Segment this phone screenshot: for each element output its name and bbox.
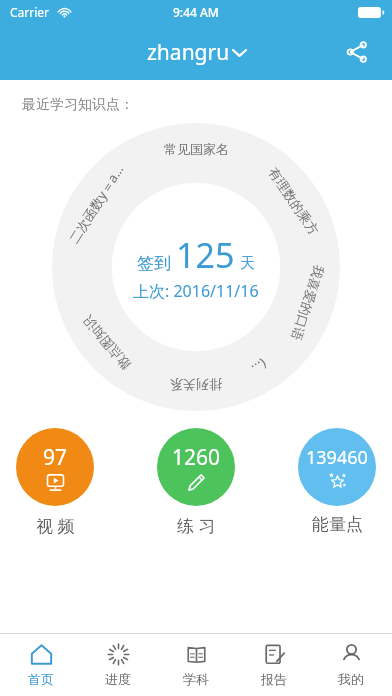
staticText: 9:44 AM <box>173 4 219 20</box>
staticText: 学科 <box>183 671 209 687</box>
staticText: 视 频 <box>36 514 75 537</box>
staticText: 1260 <box>172 443 221 472</box>
staticText: 139460 <box>306 445 368 470</box>
button[interactable]: 我的 <box>314 634 388 696</box>
staticText: 签到 <box>137 253 171 274</box>
button[interactable]: 有理数的乘方 <box>266 164 322 238</box>
button[interactable]: 97 <box>16 428 94 537</box>
button[interactable]: 139460 <box>298 428 376 535</box>
staticText: 练 习 <box>177 514 216 537</box>
staticText: 我的 <box>338 671 364 687</box>
staticText: 报告 <box>261 671 287 687</box>
button[interactable]: Share <box>334 29 380 75</box>
button[interactable]: (... <box>248 355 271 379</box>
button[interactable]: 二次函数y＝a... <box>64 161 127 247</box>
staticText: 上次: 2016/11/16 <box>133 280 259 302</box>
staticText: zhangru <box>147 38 230 67</box>
button[interactable]: 报告 <box>237 634 311 696</box>
staticText: (... <box>248 355 271 379</box>
staticText: 125 <box>176 232 235 278</box>
staticText: 有理数的乘方 <box>266 164 322 238</box>
staticText: 天 <box>240 254 255 273</box>
staticText: 首页 <box>28 671 54 687</box>
button[interactable]: 散点图知识 <box>79 313 133 373</box>
button[interactable]: 1260 <box>157 428 235 537</box>
button[interactable]: 常见国家名 <box>164 141 229 157</box>
staticText: 常见国家名 <box>164 141 229 157</box>
staticText: 97 <box>43 443 68 472</box>
staticText: 进度 <box>105 671 131 687</box>
button[interactable]: 进度 <box>81 634 155 696</box>
button[interactable]: zhangru <box>141 32 252 73</box>
staticText: 散点图知识 <box>79 313 133 373</box>
button[interactable]: 首页 <box>4 634 78 696</box>
staticText: 能量点 <box>312 514 363 535</box>
staticText: Carrier <box>10 4 50 20</box>
button[interactable]: 我喜爱的口语 <box>288 263 328 342</box>
staticText: 最近学习知识点： <box>22 96 134 114</box>
staticText: 我喜爱的口语 <box>288 263 328 342</box>
button[interactable]: 学科 <box>159 634 233 696</box>
staticText: 排列关系 <box>170 377 222 393</box>
staticText: 二次函数y＝a... <box>64 161 127 247</box>
button[interactable]: 排列关系 <box>170 377 222 393</box>
